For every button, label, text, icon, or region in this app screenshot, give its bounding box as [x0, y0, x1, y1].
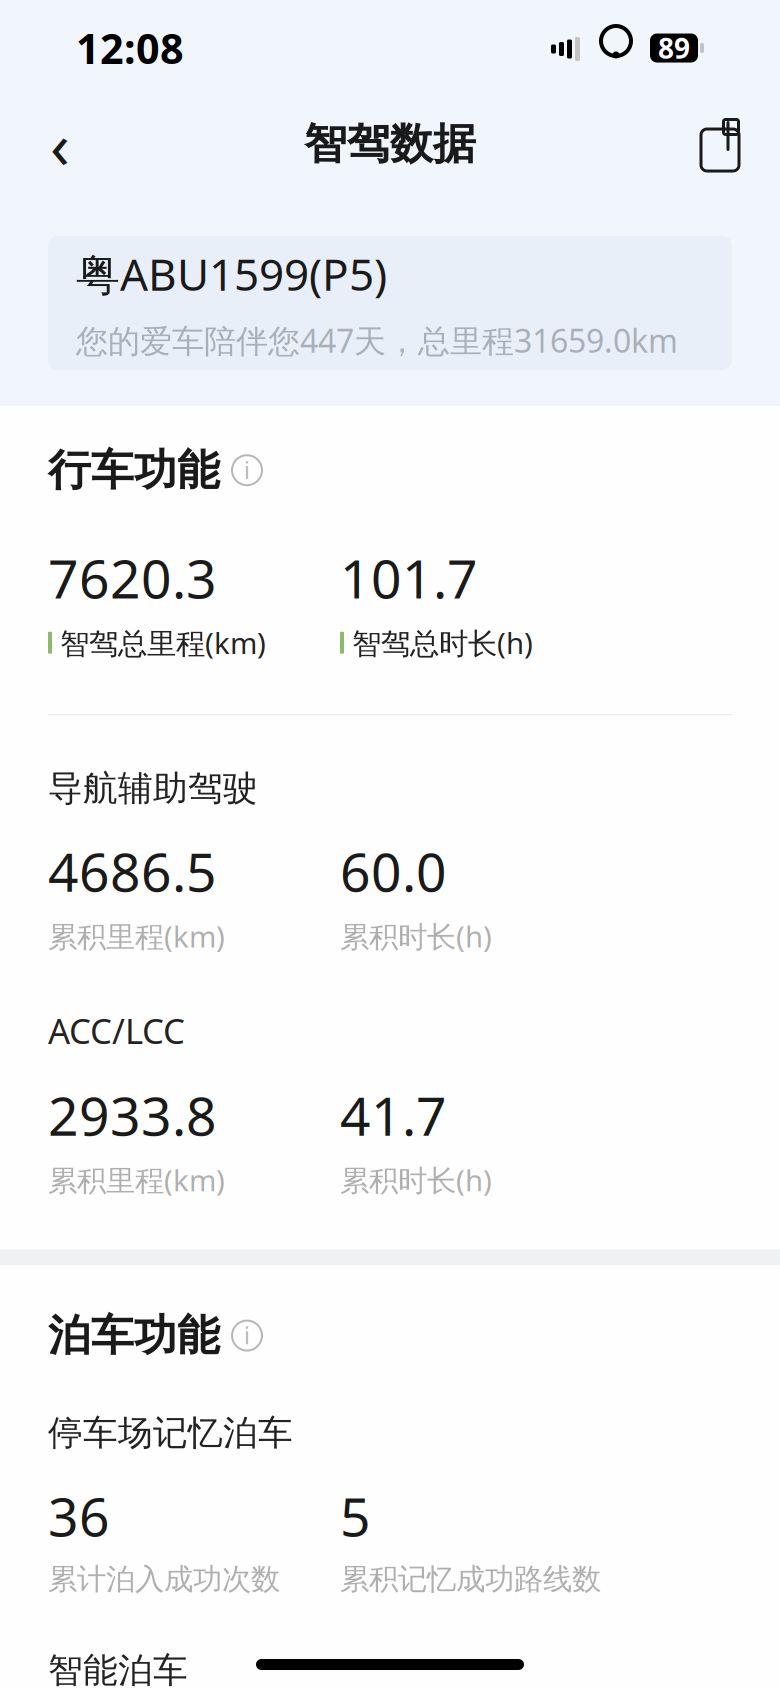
- staticText: 36: [48, 1480, 110, 1551]
- staticText: 您的爱车陪伴您447天，总里程31659.0km: [76, 319, 678, 361]
- staticText: 7620.3: [48, 542, 217, 613]
- staticText: 智能泊车: [48, 1649, 188, 1688]
- staticText: 停车场记忆泊车: [48, 1412, 293, 1454]
- button[interactable]: Share: [684, 108, 756, 180]
- staticText: 5: [340, 1480, 371, 1551]
- staticText: 智驾总里程(km): [60, 623, 266, 662]
- staticText: 粤ABU1599(P5): [76, 244, 387, 303]
- button[interactable]: About 行车功能: [232, 455, 262, 485]
- staticText: i: [244, 455, 250, 485]
- button[interactable]: About 泊车功能: [232, 1321, 262, 1351]
- staticText: ‹: [50, 101, 70, 186]
- staticText: 89: [658, 29, 690, 67]
- staticText: 60.0: [340, 836, 447, 907]
- staticText: 导航辅助驾驶: [48, 767, 258, 810]
- staticText: 智驾数据: [304, 118, 476, 170]
- staticText: 累积记忆成功路线数: [340, 1561, 601, 1597]
- staticText: 智驾总时长(h): [352, 623, 533, 662]
- staticText: 累积里程(km): [48, 917, 225, 956]
- staticText: 累计泊入成功次数: [48, 1561, 280, 1597]
- staticText: 101.7: [340, 542, 478, 613]
- button[interactable]: Back: [24, 108, 96, 180]
- staticText: 累积时长(h): [340, 1160, 492, 1199]
- staticText: 12:08: [76, 21, 184, 75]
- staticText: 4686.5: [48, 836, 217, 907]
- staticText: 泊车功能: [48, 1309, 220, 1362]
- staticText: 2933.8: [48, 1080, 217, 1150]
- staticText: 行车功能: [48, 444, 220, 496]
- staticText: 累积里程(km): [48, 1160, 225, 1199]
- staticText: ACC/LCC: [48, 1007, 185, 1053]
- staticText: 累积时长(h): [340, 917, 492, 956]
- staticText: i: [244, 1320, 250, 1351]
- staticText: 41.7: [340, 1080, 447, 1150]
